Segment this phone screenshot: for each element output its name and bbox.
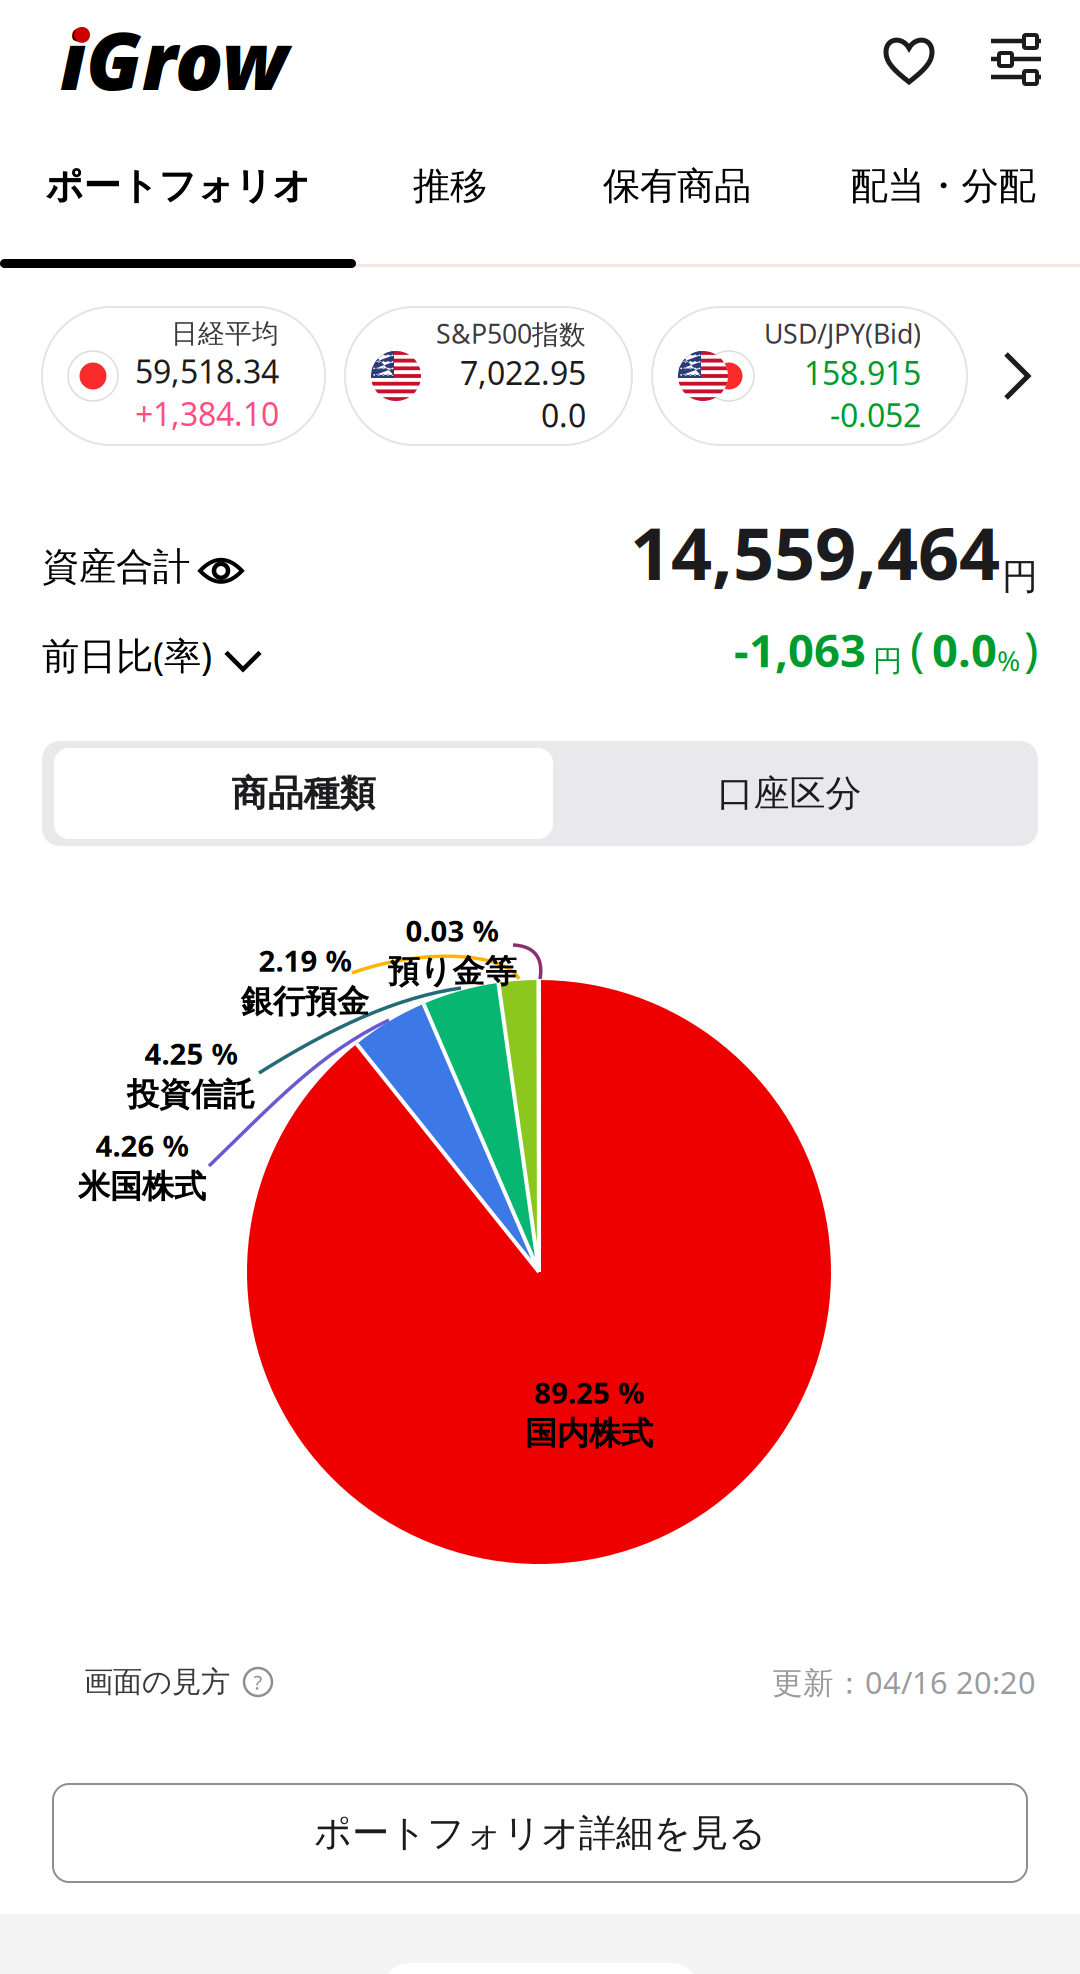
staticText: 89.25 % <box>534 1373 644 1412</box>
button[interactable]: 推移 <box>250 130 650 242</box>
staticText: 4.26 % <box>95 1126 188 1165</box>
staticText: 前日比(率) <box>42 630 212 680</box>
staticText: 0.0 <box>932 620 997 680</box>
staticText: ( <box>910 616 924 680</box>
staticText: 国内株式 <box>525 1414 653 1453</box>
staticText: 0.03 % <box>405 911 498 950</box>
staticText: ポートフォリオ詳細を見る <box>314 1810 766 1856</box>
button[interactable]: 商品種類 <box>54 748 553 839</box>
staticText: 158.915 <box>804 351 921 394</box>
staticText: 資産合計 <box>42 544 190 590</box>
staticText: 米国株式 <box>78 1167 206 1206</box>
staticText: 画面の見方 <box>84 1664 230 1700</box>
staticText: % <box>997 642 1020 679</box>
staticText: 銀行預金 <box>241 982 369 1021</box>
button[interactable]: 保有商品 <box>477 130 877 242</box>
button[interactable]: Change period <box>212 642 274 680</box>
staticText: 59,518.34 <box>135 350 279 392</box>
staticText: 円 <box>873 643 902 679</box>
button[interactable]: 画面の見方 <box>84 1664 272 1700</box>
button[interactable]: Filter <box>974 11 1058 107</box>
staticText: 配当・分配 <box>850 163 1035 209</box>
staticText: 4.25 % <box>144 1034 237 1073</box>
button[interactable]: Hide balance <box>190 547 252 595</box>
staticText: 円 <box>1002 555 1038 599</box>
staticText: 預り金等 <box>387 952 516 991</box>
button[interactable]: ポートフォリオ <box>0 130 378 242</box>
button[interactable]: 口座区分 <box>553 748 1026 839</box>
button[interactable]: Favorites <box>844 11 974 107</box>
staticText: 商品種類 <box>231 771 375 816</box>
staticText: ) <box>1024 616 1038 680</box>
button[interactable]: USD/JPY(Bid) <box>652 307 967 445</box>
staticText: 2.19 % <box>258 941 351 980</box>
button[interactable]: S&P500指数 <box>345 307 632 445</box>
staticText: -0.052 <box>830 394 921 436</box>
staticText: 14,559,464 <box>630 504 1000 600</box>
button[interactable]: ポートフォリオ詳細を見る <box>53 1784 1027 1882</box>
staticText: USD/JPY(Bid) <box>764 316 921 351</box>
staticText: 更新：04/16 20:20 <box>772 1662 1036 1702</box>
button[interactable]: 配当・分配 <box>743 130 1080 242</box>
staticText: 口座区分 <box>717 771 861 816</box>
staticText: -1,063 <box>734 620 866 680</box>
button[interactable]: More markets <box>987 346 1047 406</box>
staticText: S&P500指数 <box>436 316 586 351</box>
staticText: 保有商品 <box>603 163 751 209</box>
staticText: 投資信託 <box>127 1075 255 1114</box>
staticText: 0.0 <box>541 394 586 436</box>
staticText: 7,022.95 <box>460 351 586 394</box>
staticText: ? <box>253 1669 262 1695</box>
button[interactable]: 日経平均 <box>42 307 325 445</box>
staticText: ポートフォリオ <box>45 163 310 209</box>
staticText: 日経平均 <box>171 317 279 350</box>
staticText: 推移 <box>413 163 487 209</box>
staticText: +1,384.10 <box>135 392 279 435</box>
staticText: iGrow <box>60 6 288 112</box>
